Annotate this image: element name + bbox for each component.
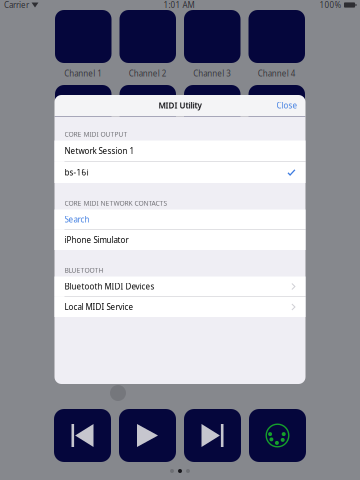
button[interactable]: MIDI settings xyxy=(249,409,306,462)
button[interactable]: Channel 4 xyxy=(248,10,305,79)
staticText: Carrier xyxy=(4,0,29,10)
staticText: MIDI Utility xyxy=(158,100,201,111)
staticText: 100% xyxy=(319,0,341,10)
staticText: Local MIDI Service xyxy=(64,302,133,312)
button[interactable]: Next xyxy=(184,409,241,462)
button[interactable]: Previous xyxy=(54,409,111,462)
staticText: CORE MIDI NETWORK CONTACTS xyxy=(64,199,167,207)
staticText: Channel 3 xyxy=(193,68,231,79)
staticText: Network Session 1 xyxy=(64,146,134,156)
button[interactable]: bs-16i xyxy=(54,162,305,183)
staticText: CORE MIDI OUTPUT xyxy=(64,130,127,138)
button[interactable]: Local MIDI Service xyxy=(54,297,305,317)
button[interactable]: Close xyxy=(268,95,305,116)
staticText: Channel 1 xyxy=(64,68,102,79)
staticText: Channel 4 xyxy=(258,68,296,79)
staticText: BLUETOOTH xyxy=(64,266,103,274)
staticText: Channel 2 xyxy=(129,68,167,79)
button[interactable]: iPhone Simulator xyxy=(54,230,305,250)
staticText: 1:01 AM xyxy=(163,0,194,10)
staticText: Close xyxy=(276,100,297,111)
button[interactable]: Channel 3 xyxy=(184,10,240,79)
staticText: bs-16i xyxy=(64,167,88,178)
button[interactable]: Search xyxy=(54,209,305,229)
staticText: Search xyxy=(64,214,89,225)
button[interactable]: Play xyxy=(119,409,176,462)
button[interactable]: Channel 1 xyxy=(55,10,111,79)
staticText: Bluetooth MIDI Devices xyxy=(64,281,154,292)
button[interactable]: Bluetooth MIDI Devices xyxy=(54,276,305,296)
staticText: iPhone Simulator xyxy=(64,235,128,245)
button[interactable]: Network Session 1 xyxy=(54,140,305,161)
button[interactable]: Channel 2 xyxy=(119,10,176,79)
